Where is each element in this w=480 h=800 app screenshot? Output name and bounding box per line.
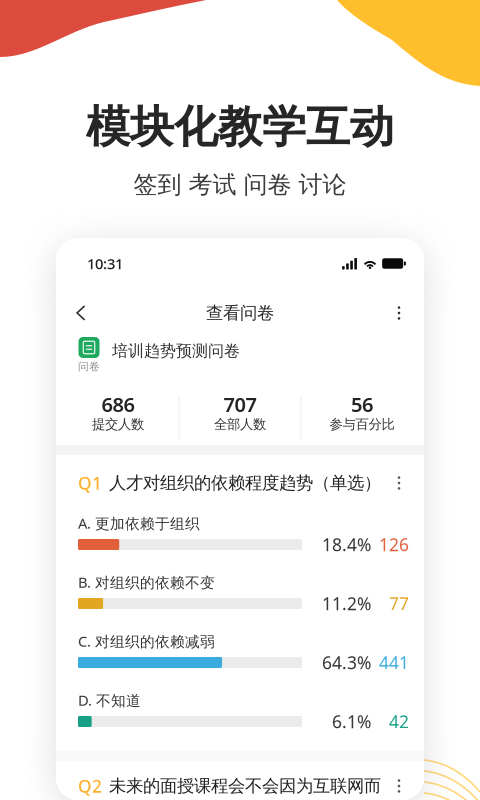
staticText: 441: [379, 651, 409, 674]
staticText: Q2: [78, 774, 102, 797]
staticText: 56: [351, 391, 373, 418]
staticText: 问卷: [78, 360, 100, 373]
staticText: 未来的面授课程会不会因为互联网而: [109, 775, 381, 797]
staticText: C. 对组织的依赖减弱: [78, 631, 215, 651]
staticText: 提交人数: [92, 416, 144, 432]
staticText: A. 更加依赖于组织: [78, 513, 200, 533]
button[interactable]: 返回: [63, 296, 99, 330]
staticText: 126: [379, 533, 409, 556]
button[interactable]: 题目菜单: [386, 773, 412, 799]
button[interactable]: 题目菜单: [386, 470, 412, 496]
staticText: D. 不知道: [78, 690, 141, 710]
staticText: 11.2%: [322, 592, 371, 615]
staticText: 64.3%: [322, 651, 371, 674]
staticText: 查看问卷: [206, 302, 274, 324]
staticText: 签到 考试 问卷 讨论: [133, 170, 346, 199]
staticText: 77: [389, 592, 409, 615]
staticText: 全部人数: [214, 416, 266, 432]
staticText: B. 对组织的依赖不变: [78, 572, 215, 592]
staticText: 18.4%: [322, 533, 371, 556]
staticText: 42: [389, 710, 409, 733]
staticText: 10:31: [87, 254, 123, 273]
staticText: 参与百分比: [329, 416, 394, 432]
staticText: 培训趋势预测问卷: [112, 341, 240, 361]
staticText: 6.1%: [332, 710, 371, 733]
staticText: 707: [223, 391, 256, 418]
button[interactable]: 更多: [384, 296, 414, 330]
staticText: 686: [101, 391, 134, 418]
staticText: 人才对组织的依赖程度趋势（单选）: [109, 472, 381, 494]
staticText: 模块化教学互动: [86, 100, 394, 154]
staticText: Q1: [78, 471, 102, 494]
